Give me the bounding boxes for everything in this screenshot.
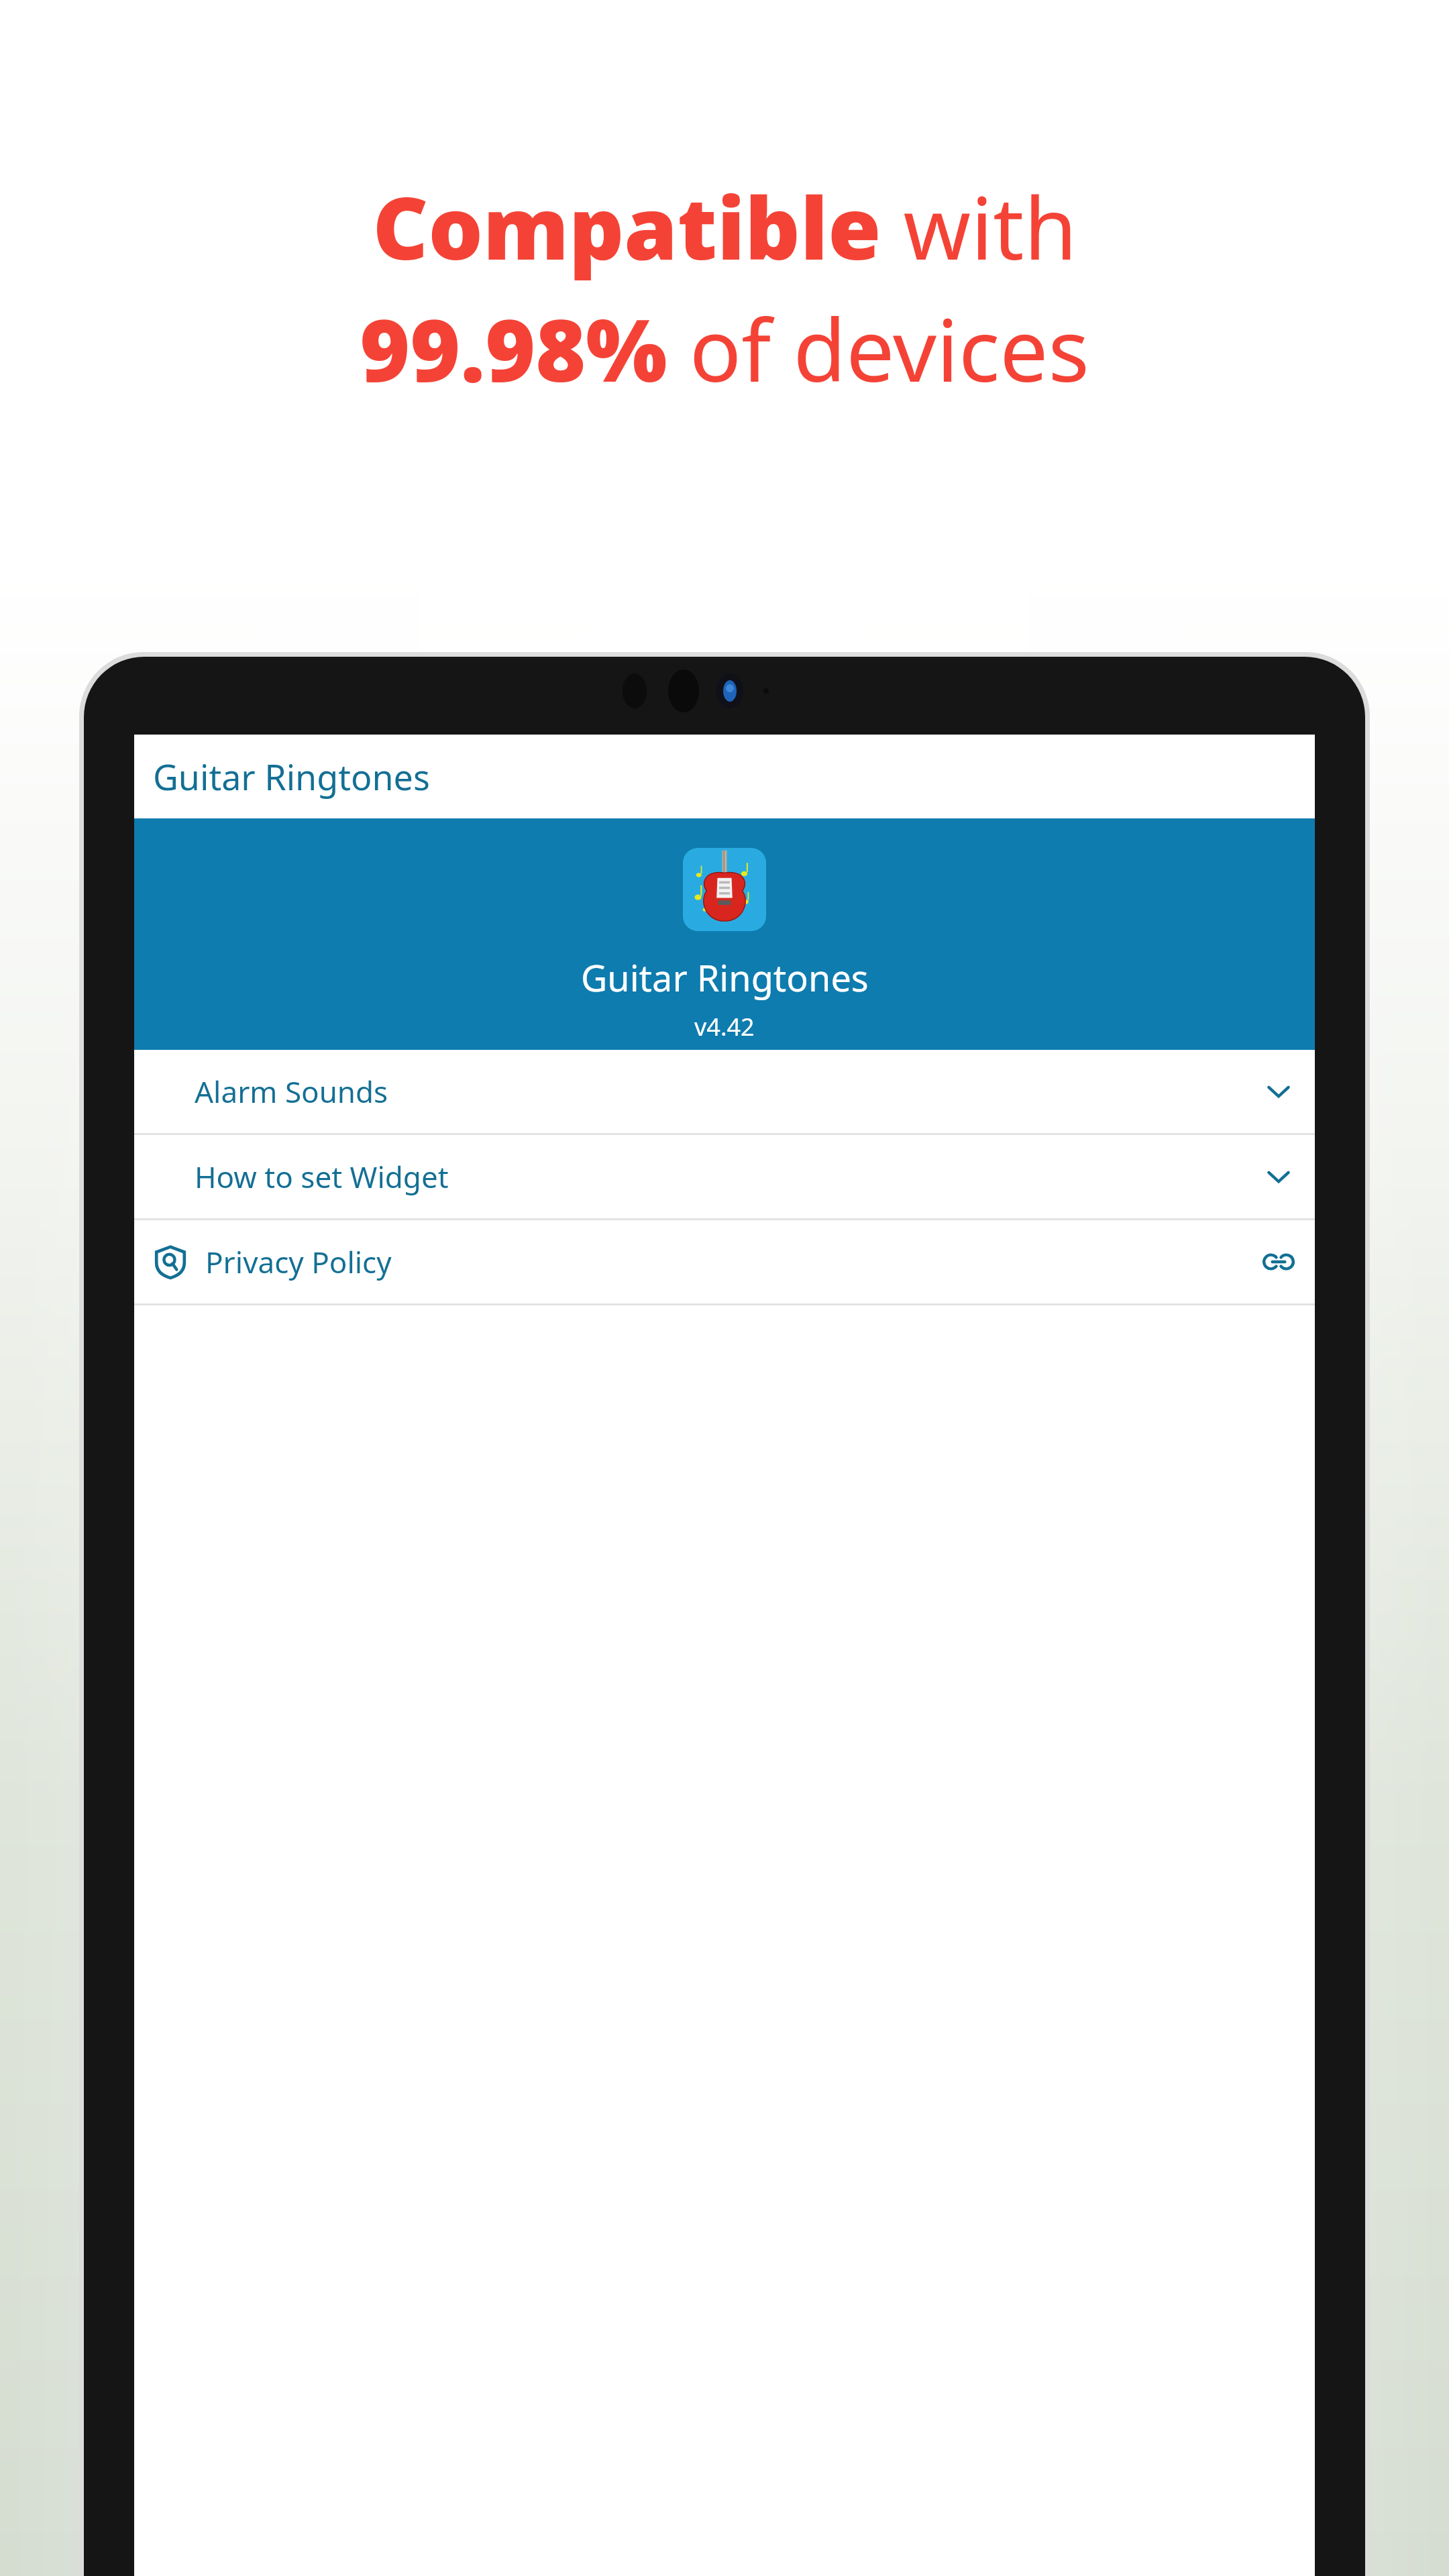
staticText: How to set Widget: [195, 1157, 449, 1197]
staticText: Guitar Ringtones: [581, 953, 869, 1002]
staticText: Compatible with: [372, 168, 1077, 284]
staticText: Alarm Sounds: [195, 1071, 388, 1112]
staticText: Privacy Policy: [205, 1242, 392, 1282]
staticText: Guitar Ringtones: [153, 753, 430, 800]
button[interactable]: Alarm Sounds: [134, 1050, 1315, 1133]
staticText: 99.98% of devices: [360, 290, 1089, 407]
button[interactable]: Privacy Policy: [134, 1220, 1315, 1303]
button[interactable]: How to set Widget: [134, 1135, 1315, 1218]
staticText: v4.42: [694, 1010, 755, 1043]
